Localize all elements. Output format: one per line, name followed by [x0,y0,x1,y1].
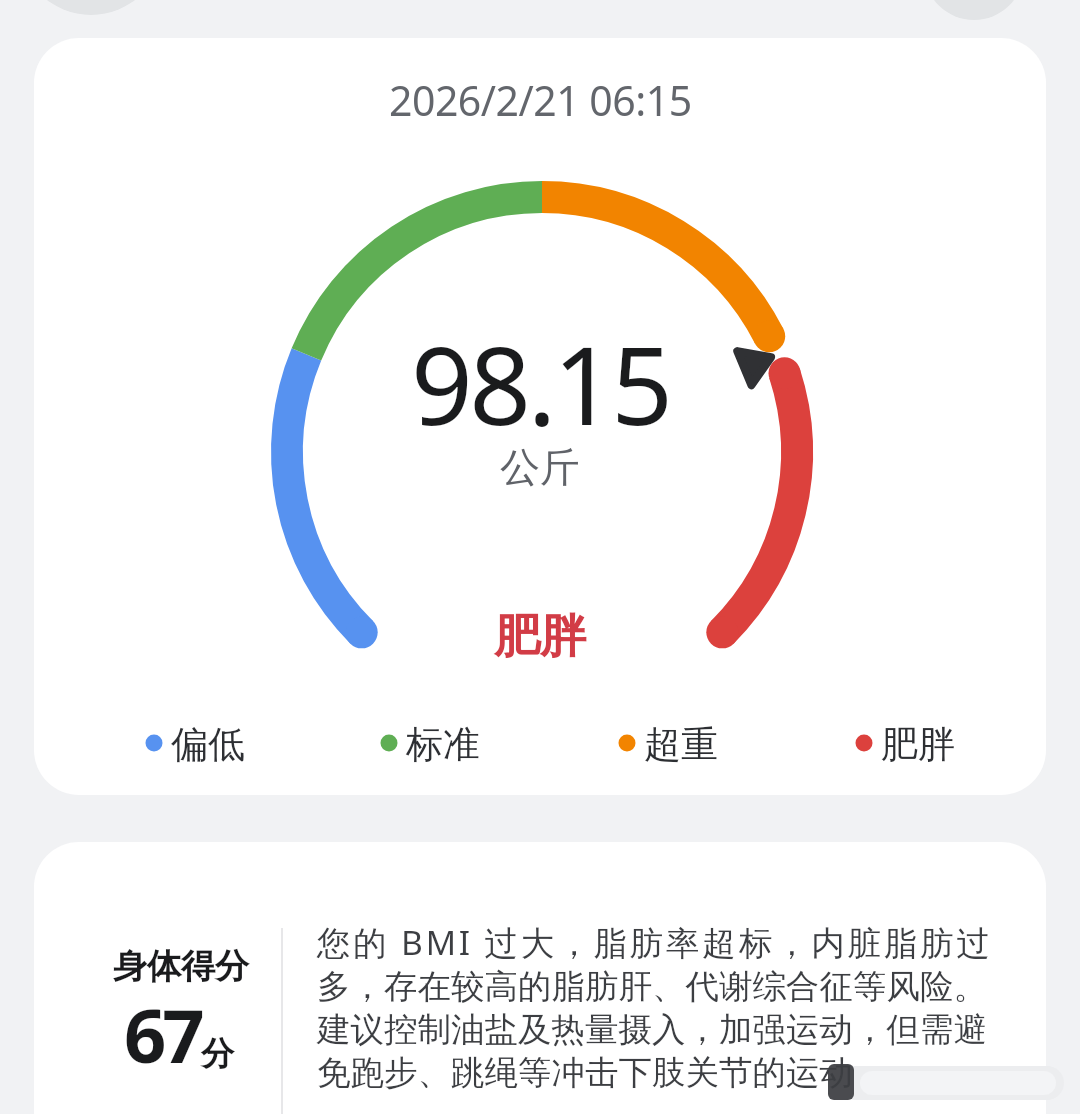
staticText: 2026/2/21 06:15 [389,72,692,128]
button[interactable] [34,38,1046,795]
staticText: 98.15 [411,310,670,457]
staticText: 67 [124,984,201,1085]
staticText: 偏低 [171,721,245,768]
staticText: 您的 BMI 过大，脂肪率超标，内脏脂肪过 多，存在较高的脂肪肝、代谢综合征等风… [317,919,993,1094]
staticText: 肥胖 [881,721,955,768]
staticText: 标准 [406,721,480,768]
staticText: 超重 [644,721,718,768]
button[interactable] [34,842,1046,1114]
staticText: 肥胖 [494,608,586,666]
staticText: 身体得分 [113,945,249,988]
staticText: 公斤 [500,442,580,492]
staticText: 分 [201,1033,234,1075]
